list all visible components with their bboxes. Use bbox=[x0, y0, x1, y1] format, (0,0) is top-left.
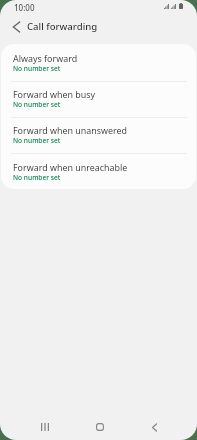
button[interactable]: Recent apps bbox=[27, 414, 62, 440]
staticText: No number set bbox=[13, 100, 61, 109]
staticText: No number set bbox=[13, 64, 61, 73]
staticText: No number set bbox=[13, 136, 61, 145]
staticText: Call forwarding bbox=[27, 20, 98, 33]
staticText: Always forward bbox=[13, 52, 78, 64]
button[interactable]: Always forward bbox=[1, 44, 196, 80]
button[interactable]: Navigate up bbox=[6, 17, 26, 37]
staticText: Forward when unanswered bbox=[13, 124, 127, 136]
button[interactable]: Forward when busy bbox=[1, 80, 196, 116]
staticText: 10:00 bbox=[14, 2, 35, 13]
button[interactable]: Back bbox=[137, 414, 172, 440]
button[interactable]: Forward when unreachable bbox=[1, 153, 196, 189]
staticText: Forward when unreachable bbox=[13, 161, 128, 173]
staticText: Forward when busy bbox=[13, 88, 95, 100]
button[interactable]: Forward when unanswered bbox=[1, 116, 196, 152]
staticText: No number set bbox=[13, 173, 61, 182]
button[interactable]: Home bbox=[82, 414, 117, 440]
